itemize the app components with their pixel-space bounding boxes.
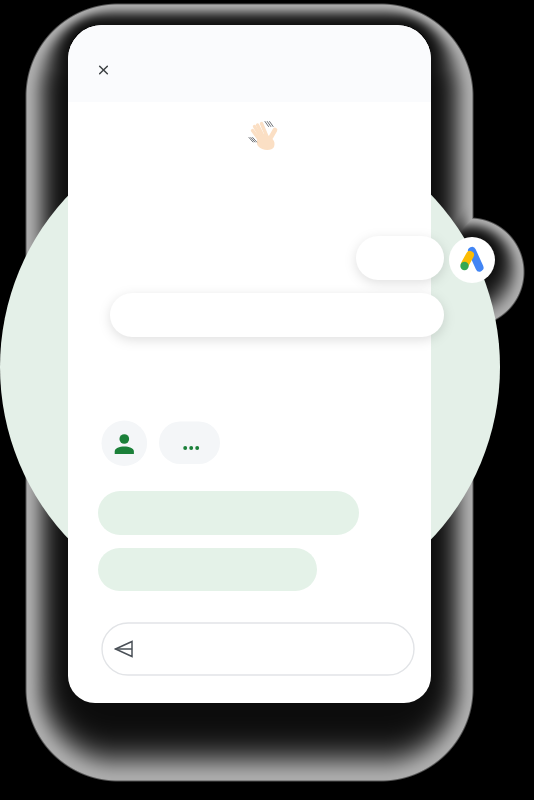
button[interactable]: Account — [102, 420, 146, 464]
button[interactable]: More options — [159, 422, 224, 463]
button[interactable]: Message input — [102, 623, 414, 675]
button[interactable]: Google Ads — [449, 237, 495, 283]
button[interactable]: Close — [88, 54, 120, 86]
